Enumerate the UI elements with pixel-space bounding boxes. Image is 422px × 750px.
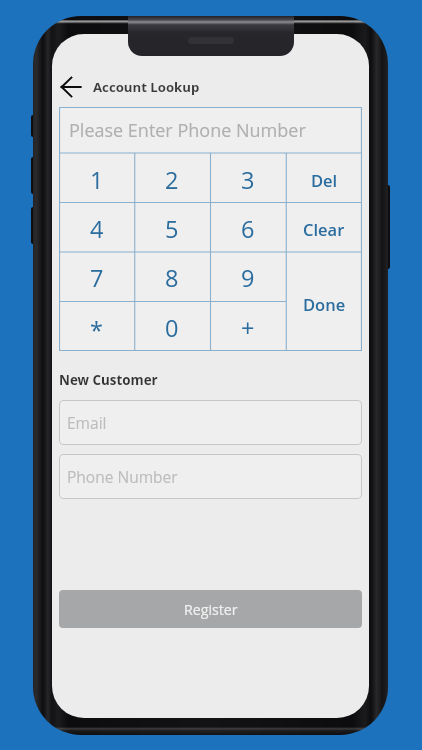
button[interactable]: Clear	[286, 202, 362, 252]
staticText: 6	[241, 213, 255, 245]
staticText: Done	[303, 293, 346, 315]
staticText: 7	[90, 262, 104, 294]
staticText: Please Enter Phone Number	[69, 118, 306, 143]
button[interactable]: 0	[134, 301, 210, 351]
button[interactable]: Email	[59, 400, 362, 445]
staticText: 8	[165, 262, 179, 294]
button[interactable]: Phone Number	[59, 454, 362, 499]
staticText: New Customer	[59, 371, 158, 387]
button[interactable]: 5	[134, 202, 210, 251]
staticText: 9	[241, 262, 255, 294]
button[interactable]: 3	[210, 153, 286, 202]
staticText: +	[241, 312, 255, 344]
staticText: Clear	[303, 218, 345, 240]
staticText: *	[90, 314, 103, 346]
staticText: Phone Number	[67, 466, 178, 487]
button[interactable]: 9	[210, 251, 286, 301]
button[interactable]: Del	[286, 153, 362, 202]
button[interactable]: 6	[210, 202, 286, 251]
staticText: 5	[165, 213, 179, 245]
staticText: Register	[184, 600, 238, 619]
staticText: Del	[311, 169, 338, 191]
staticText: 2	[165, 164, 179, 196]
staticText: 0	[165, 312, 179, 344]
button[interactable]: Back	[56, 72, 85, 101]
staticText: 1	[90, 164, 104, 196]
button[interactable]: +	[210, 301, 286, 351]
button[interactable]: 8	[134, 251, 210, 301]
button[interactable]: *	[59, 301, 134, 351]
staticText: Email	[67, 412, 107, 433]
button[interactable]: Done	[286, 252, 362, 351]
button[interactable]: Please Enter Phone Number	[59, 107, 362, 153]
staticText: 4	[90, 213, 104, 245]
staticText: 3	[241, 164, 255, 196]
staticText: Account Lookup	[93, 78, 200, 96]
button[interactable]: 4	[59, 202, 134, 251]
button[interactable]: 2	[134, 153, 210, 202]
button[interactable]: Register	[59, 590, 362, 628]
button[interactable]: 1	[59, 153, 134, 202]
button[interactable]: 7	[59, 251, 134, 301]
